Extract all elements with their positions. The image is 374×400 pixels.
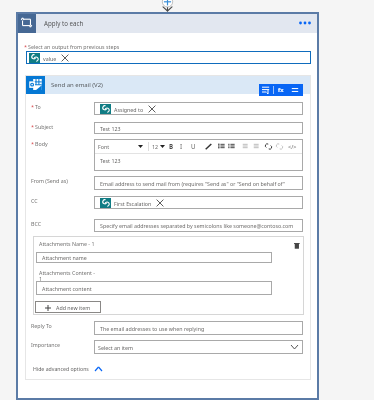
staticText: Reply To xyxy=(31,322,52,329)
staticText: I xyxy=(180,142,183,150)
button[interactable]: Add dynamic content xyxy=(259,84,273,96)
staticText: Test 123 xyxy=(100,157,121,164)
button[interactable]: Send an email (V2) xyxy=(25,75,311,94)
staticText: * xyxy=(31,123,35,130)
staticText: Font xyxy=(98,143,110,150)
staticText: BCC xyxy=(31,220,42,227)
staticText: Subject xyxy=(35,123,54,130)
staticText: * xyxy=(31,140,35,147)
staticText: Attachments Content - xyxy=(39,269,96,276)
staticText: Attachment content xyxy=(42,285,92,292)
button[interactable]: Delete xyxy=(291,240,302,251)
staticText: Body xyxy=(35,140,48,147)
staticText: Add new item xyxy=(56,304,91,311)
button[interactable]: More commands xyxy=(295,13,315,33)
button[interactable]: Add new item xyxy=(35,301,101,313)
staticText: Select an output from previous steps xyxy=(28,43,120,50)
staticText: Test 123 xyxy=(100,125,121,132)
staticText: value xyxy=(43,55,57,62)
staticText: Send an email (V2) xyxy=(51,81,103,89)
staticText: Email address to send mail from (require… xyxy=(100,180,303,187)
staticText: CC xyxy=(31,197,38,204)
staticText: * xyxy=(24,43,28,50)
staticText: Apply to each xyxy=(44,19,84,27)
staticText: </> xyxy=(288,143,297,150)
staticText: B xyxy=(169,142,174,150)
staticText: First Escalation xyxy=(114,200,152,207)
staticText: 12 xyxy=(152,143,159,150)
button[interactable]: Apply to each xyxy=(16,12,319,33)
staticText: The email addresses to use when replying xyxy=(100,325,205,332)
staticText: Assigned to xyxy=(114,106,144,113)
staticText: Hide advanced options xyxy=(33,365,89,372)
staticText: 1 xyxy=(39,275,43,282)
staticText: Specify email addresses separated by sem… xyxy=(100,222,294,229)
staticText: To xyxy=(35,103,41,110)
staticText: Attachment name xyxy=(42,254,87,261)
button[interactable]: Hide advanced options xyxy=(31,363,104,374)
button[interactable]: Expression xyxy=(274,84,287,96)
button[interactable]: Menu xyxy=(287,84,302,96)
staticText: From (Send as) xyxy=(31,177,68,184)
staticText: Attachments Name - 1 xyxy=(39,240,95,247)
staticText: fx xyxy=(278,86,284,94)
staticText: * xyxy=(31,103,35,110)
staticText: Importance xyxy=(31,341,61,348)
button[interactable]: Insert a new step xyxy=(161,0,174,10)
staticText: Select an item xyxy=(98,344,133,351)
staticText: U xyxy=(191,142,196,150)
